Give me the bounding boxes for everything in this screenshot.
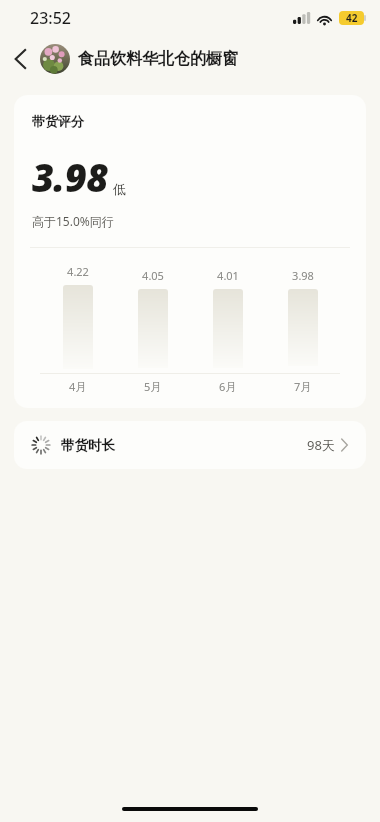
staticText: 5月	[144, 379, 162, 394]
staticText: 4.22	[67, 264, 89, 279]
staticText: 6月	[219, 379, 237, 394]
staticText: 3.98	[32, 151, 108, 203]
staticText: 7月	[294, 379, 312, 394]
staticText: 带货时长	[61, 437, 115, 454]
staticText: 23:52	[30, 7, 71, 29]
staticText: 4月	[69, 379, 87, 394]
staticText: 食品饮料华北仓的橱窗	[78, 49, 238, 69]
staticText: 42	[346, 11, 358, 25]
staticText: 3.98	[292, 268, 314, 283]
staticText: 4.05	[142, 268, 164, 283]
button[interactable]: 带货时长	[14, 421, 366, 469]
button[interactable]: Shop avatar	[40, 44, 70, 74]
staticText: 高于15.0%同行	[32, 213, 114, 229]
staticText: 带货评分	[32, 113, 84, 129]
button[interactable]: Back	[0, 39, 40, 79]
staticText: 4.01	[217, 268, 239, 283]
staticText: 98天	[307, 436, 335, 454]
staticText: 低	[113, 181, 126, 197]
